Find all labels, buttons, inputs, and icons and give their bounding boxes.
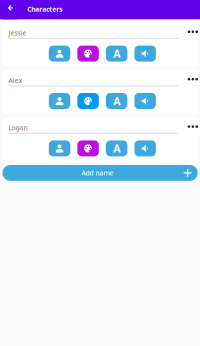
staticText: Jessie (8, 28, 26, 37)
staticText: Characters (27, 5, 62, 14)
staticText: Add name (81, 168, 113, 177)
button[interactable]: Add name (2, 165, 198, 181)
button[interactable]: Character (49, 140, 70, 156)
button[interactable]: Text (106, 46, 127, 62)
button[interactable]: More options for Alex (184, 74, 200, 88)
button[interactable]: Appearance (77, 46, 99, 62)
button[interactable]: More options for Jessie (184, 26, 200, 40)
staticText: Logan (8, 123, 27, 132)
button[interactable]: Appearance (77, 140, 99, 156)
button[interactable]: Voice (134, 46, 156, 62)
button[interactable]: Back (3, 0, 17, 19)
button[interactable]: Character (49, 93, 70, 109)
staticText: Alex (8, 76, 22, 85)
button[interactable]: More options for Logan (184, 121, 200, 135)
button[interactable]: Text (106, 93, 127, 109)
button[interactable]: Appearance (77, 93, 99, 109)
staticText: A (113, 46, 120, 61)
button[interactable]: Voice (134, 140, 156, 156)
button[interactable]: Character (49, 46, 70, 62)
button[interactable]: Text (106, 140, 127, 156)
button[interactable]: Voice (134, 93, 156, 109)
staticText: A (113, 94, 120, 108)
staticText: A (113, 141, 120, 155)
